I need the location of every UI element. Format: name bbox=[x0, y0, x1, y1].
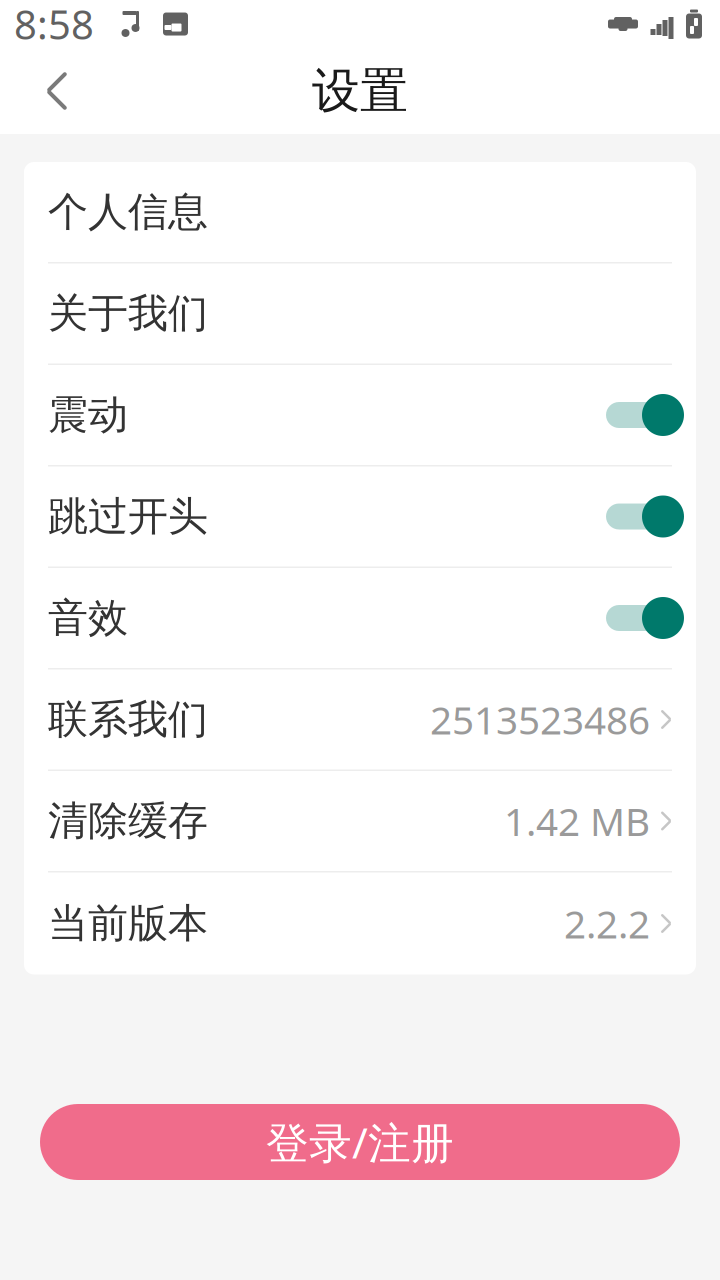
button[interactable]: Back bbox=[20, 54, 94, 128]
staticText: 清除缓存 bbox=[48, 796, 208, 845]
staticText: 音效 bbox=[48, 593, 128, 642]
staticText: 联系我们 bbox=[48, 695, 208, 744]
staticText: 关于我们 bbox=[48, 289, 208, 338]
staticText: 登录/注册 bbox=[266, 1114, 454, 1170]
button[interactable]: 联系我们 bbox=[24, 669, 696, 769]
button[interactable]: 登录/注册 bbox=[40, 1104, 680, 1180]
button[interactable]: 音效 bbox=[24, 568, 696, 668]
button[interactable]: 个人信息 bbox=[24, 162, 696, 262]
button[interactable]: 跳过开头 bbox=[24, 466, 696, 566]
button[interactable]: 关于我们 bbox=[24, 263, 696, 363]
button[interactable]: 清除缓存 bbox=[24, 771, 696, 871]
staticText: 1.42 MB bbox=[504, 795, 650, 847]
button[interactable]: 当前版本 bbox=[24, 872, 696, 974]
staticText: 8:58 bbox=[14, 0, 94, 50]
staticText: 跳过开头 bbox=[48, 492, 208, 541]
staticText: 个人信息 bbox=[48, 187, 208, 236]
staticText: 2513523486 bbox=[430, 694, 650, 745]
staticText: 当前版本 bbox=[48, 899, 208, 948]
staticText: 震动 bbox=[48, 390, 128, 439]
staticText: 2.2.2 bbox=[564, 898, 650, 949]
button[interactable]: 震动 bbox=[24, 365, 696, 465]
staticText: 设置 bbox=[312, 61, 408, 120]
